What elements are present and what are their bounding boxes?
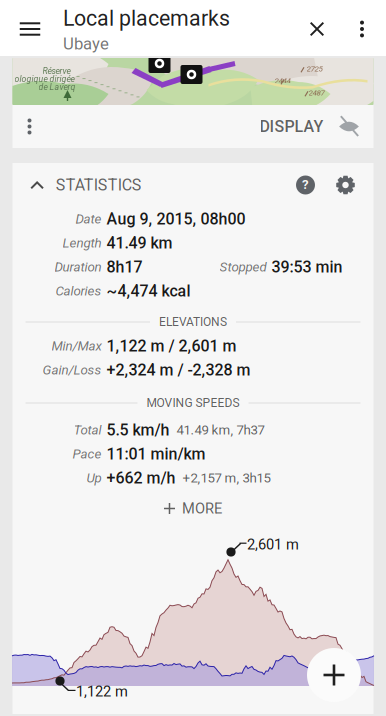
staticText: Local placemarks: [63, 6, 230, 31]
staticText: Min/Max: [51, 338, 101, 354]
button[interactable]: Close: [294, 5, 340, 53]
button[interactable]: More options: [343, 5, 381, 53]
staticText: 2444: [274, 76, 290, 85]
staticText: 41.49 km: [106, 234, 172, 252]
staticText: DISPLAY: [259, 117, 323, 136]
staticText: 39:53 min: [271, 258, 342, 276]
staticText: ELEVATIONS: [159, 315, 227, 329]
staticText: 2487: [308, 88, 324, 97]
button[interactable]: MORE: [133, 490, 253, 527]
staticText: Gain/Loss: [42, 362, 101, 378]
staticText: 1,122 m: [76, 683, 128, 700]
button[interactable]: Settings: [325, 165, 365, 205]
staticText: MOVING SPEEDS: [146, 396, 239, 410]
staticText: STATISTICS: [56, 176, 142, 194]
staticText: Total: [73, 422, 101, 438]
button[interactable]: Layer options: [12, 104, 46, 148]
staticText: 2,601 m: [247, 536, 299, 553]
staticText: +662 m/h: [106, 469, 175, 487]
staticText: Up: [86, 470, 101, 486]
staticText: Length: [62, 235, 101, 251]
staticText: Stopped: [219, 259, 266, 275]
button[interactable]: STATISTICS: [12, 165, 142, 205]
button[interactable]: Navigation menu: [6, 5, 54, 53]
staticText: ologique dirigée: [14, 74, 74, 84]
button[interactable]: Add: [307, 648, 361, 702]
staticText: 2725: [306, 64, 322, 73]
staticText: Date: [75, 211, 101, 227]
staticText: 5.5 km/h: [106, 421, 169, 439]
staticText: 41.49 km, 7h37: [176, 422, 264, 438]
staticText: +2,324 m / -2,328 m: [106, 361, 250, 379]
staticText: Réserve: [42, 66, 70, 76]
staticText: Duration: [54, 259, 101, 275]
staticText: 8h17: [106, 258, 142, 276]
button[interactable]: DISPLAY: [259, 104, 373, 148]
staticText: Calories: [55, 283, 101, 299]
staticText: ~4,474 kcal: [106, 282, 190, 300]
staticText: de Laverq: [38, 82, 75, 92]
staticText: 11:01 min/km: [106, 445, 205, 463]
staticText: ?: [302, 177, 309, 192]
staticText: Pace: [72, 446, 101, 462]
staticText: MORE: [182, 500, 222, 517]
staticText: Ubaye: [63, 34, 109, 53]
staticText: +2,157 m, 3h15: [182, 470, 270, 486]
staticText: 1,122 m / 2,601 m: [106, 337, 236, 355]
button[interactable]: Help: [285, 165, 325, 205]
staticText: Aug 9, 2015, 08h00: [106, 210, 245, 228]
